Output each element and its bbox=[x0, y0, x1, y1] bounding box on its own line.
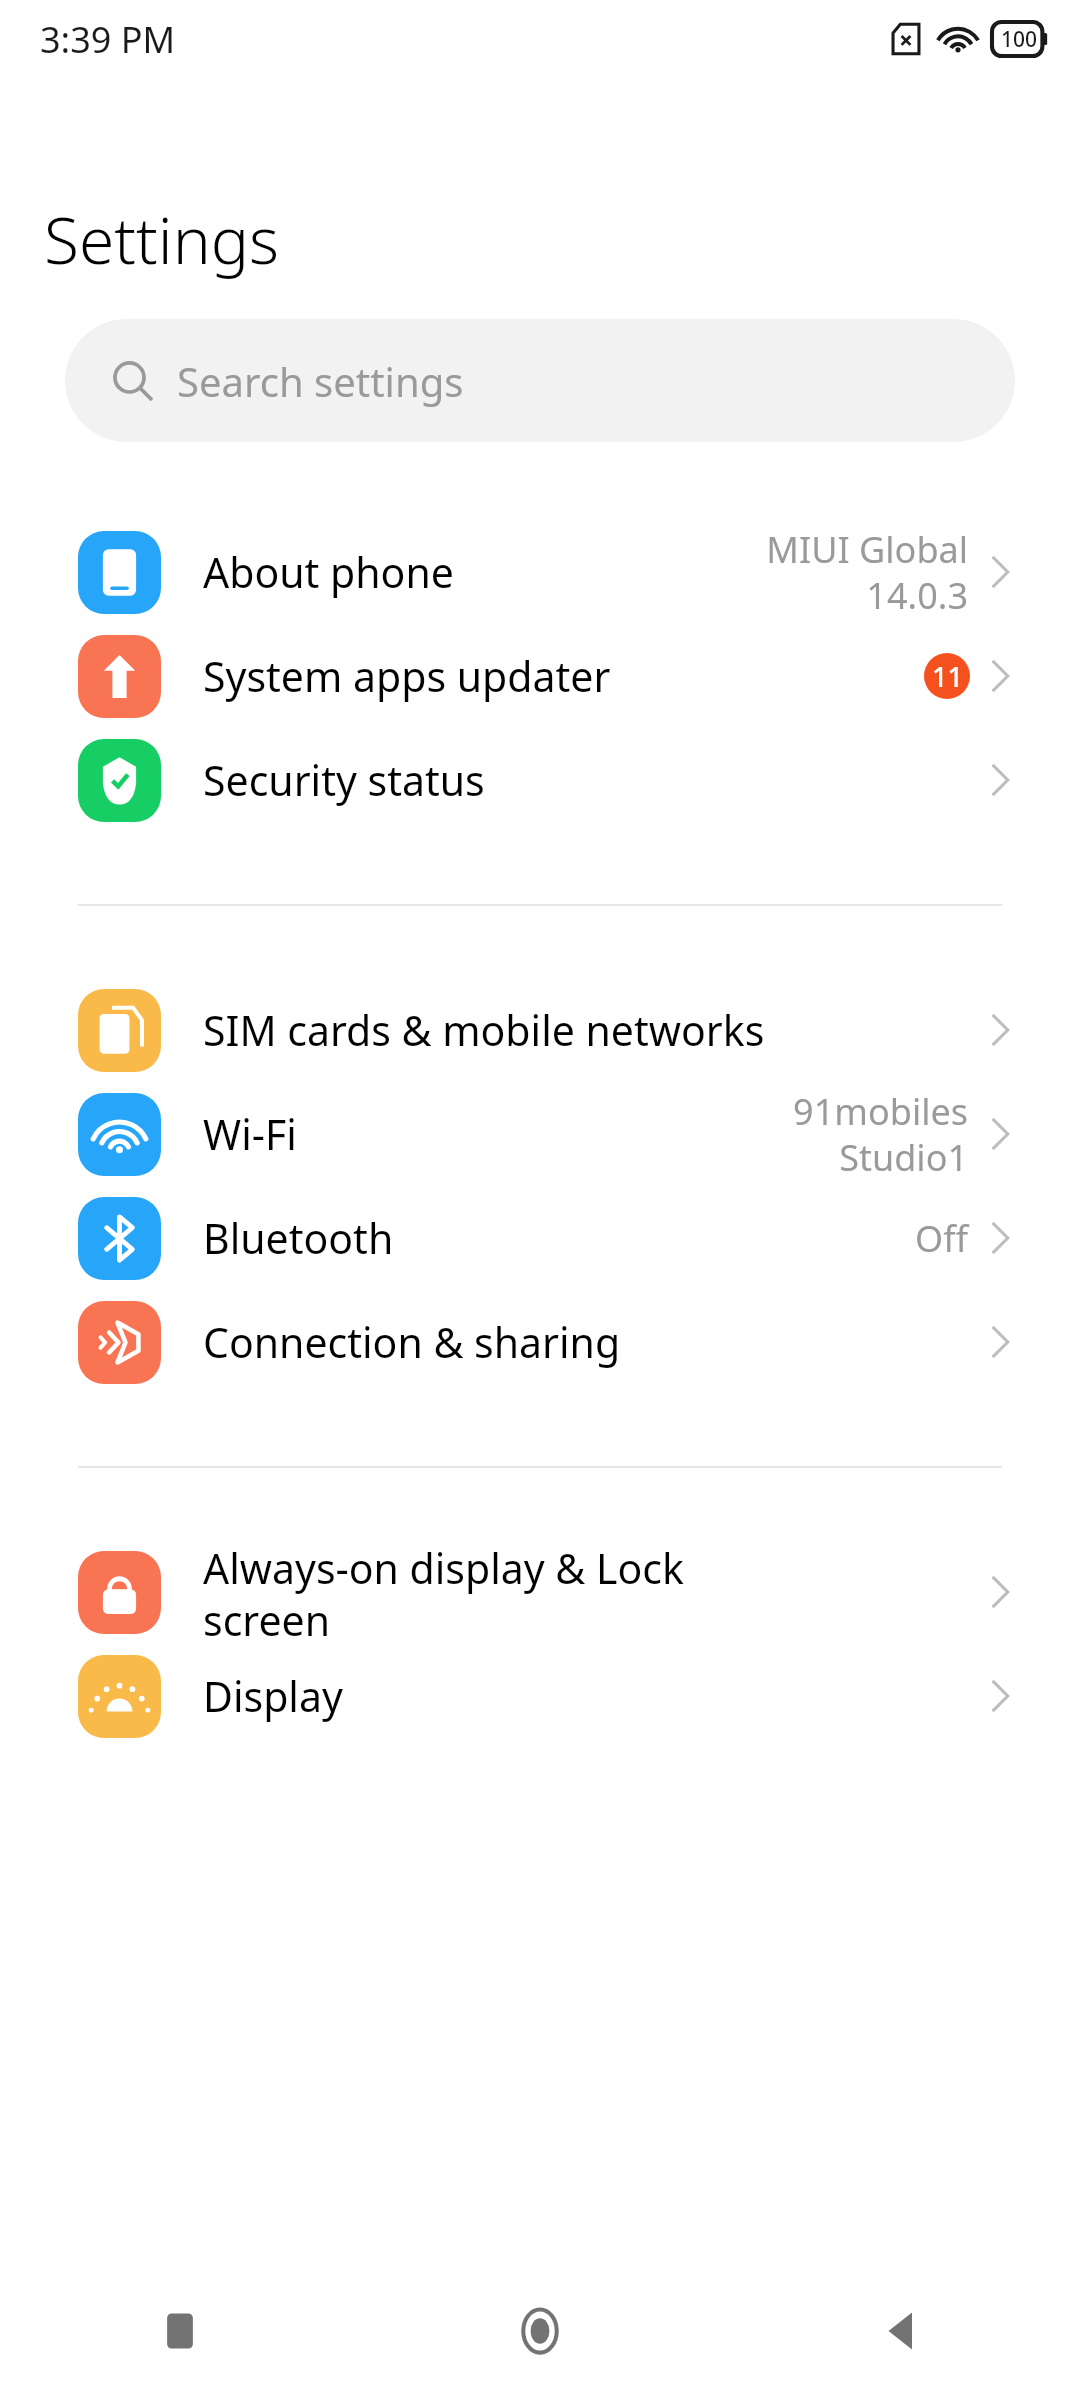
staticText: Always-on display & Lock screen bbox=[203, 1540, 984, 1644]
staticText: MIUI Global 14.0.3 bbox=[766, 525, 968, 620]
button[interactable]: Recent apps bbox=[0, 2262, 360, 2400]
button[interactable]: Connection & sharing bbox=[0, 1290, 1080, 1394]
staticText: 100 bbox=[1001, 25, 1038, 54]
button[interactable]: Search settings bbox=[65, 319, 1015, 442]
button[interactable]: Always-on display & Lock screen bbox=[0, 1540, 1080, 1644]
staticText: System apps updater bbox=[203, 648, 924, 704]
button[interactable]: Wi-Fi bbox=[0, 1082, 1080, 1186]
button[interactable]: Display bbox=[0, 1644, 1080, 1748]
staticText: 91mobiles Studio1 bbox=[793, 1087, 968, 1182]
button[interactable]: About phone bbox=[0, 520, 1080, 624]
staticText: 11 bbox=[932, 658, 963, 695]
staticText: Search settings bbox=[177, 354, 464, 408]
staticText: Off bbox=[915, 1214, 968, 1263]
button[interactable]: SIM cards & mobile networks bbox=[0, 978, 1080, 1082]
staticText: Wi-Fi bbox=[203, 1106, 793, 1162]
button[interactable]: Home bbox=[360, 2262, 720, 2400]
staticText: Security status bbox=[203, 752, 984, 808]
button[interactable]: Bluetooth bbox=[0, 1186, 1080, 1290]
staticText: Settings bbox=[44, 196, 280, 283]
button[interactable]: Back bbox=[720, 2262, 1080, 2400]
staticText: 3:39 PM bbox=[40, 15, 176, 64]
staticText: Display bbox=[203, 1668, 984, 1724]
staticText: About phone bbox=[203, 544, 766, 600]
staticText: SIM cards & mobile networks bbox=[203, 1002, 984, 1058]
button[interactable]: System apps updater bbox=[0, 624, 1080, 728]
staticText: Bluetooth bbox=[203, 1210, 915, 1266]
button[interactable]: Security status bbox=[0, 728, 1080, 832]
staticText: Connection & sharing bbox=[203, 1314, 984, 1370]
